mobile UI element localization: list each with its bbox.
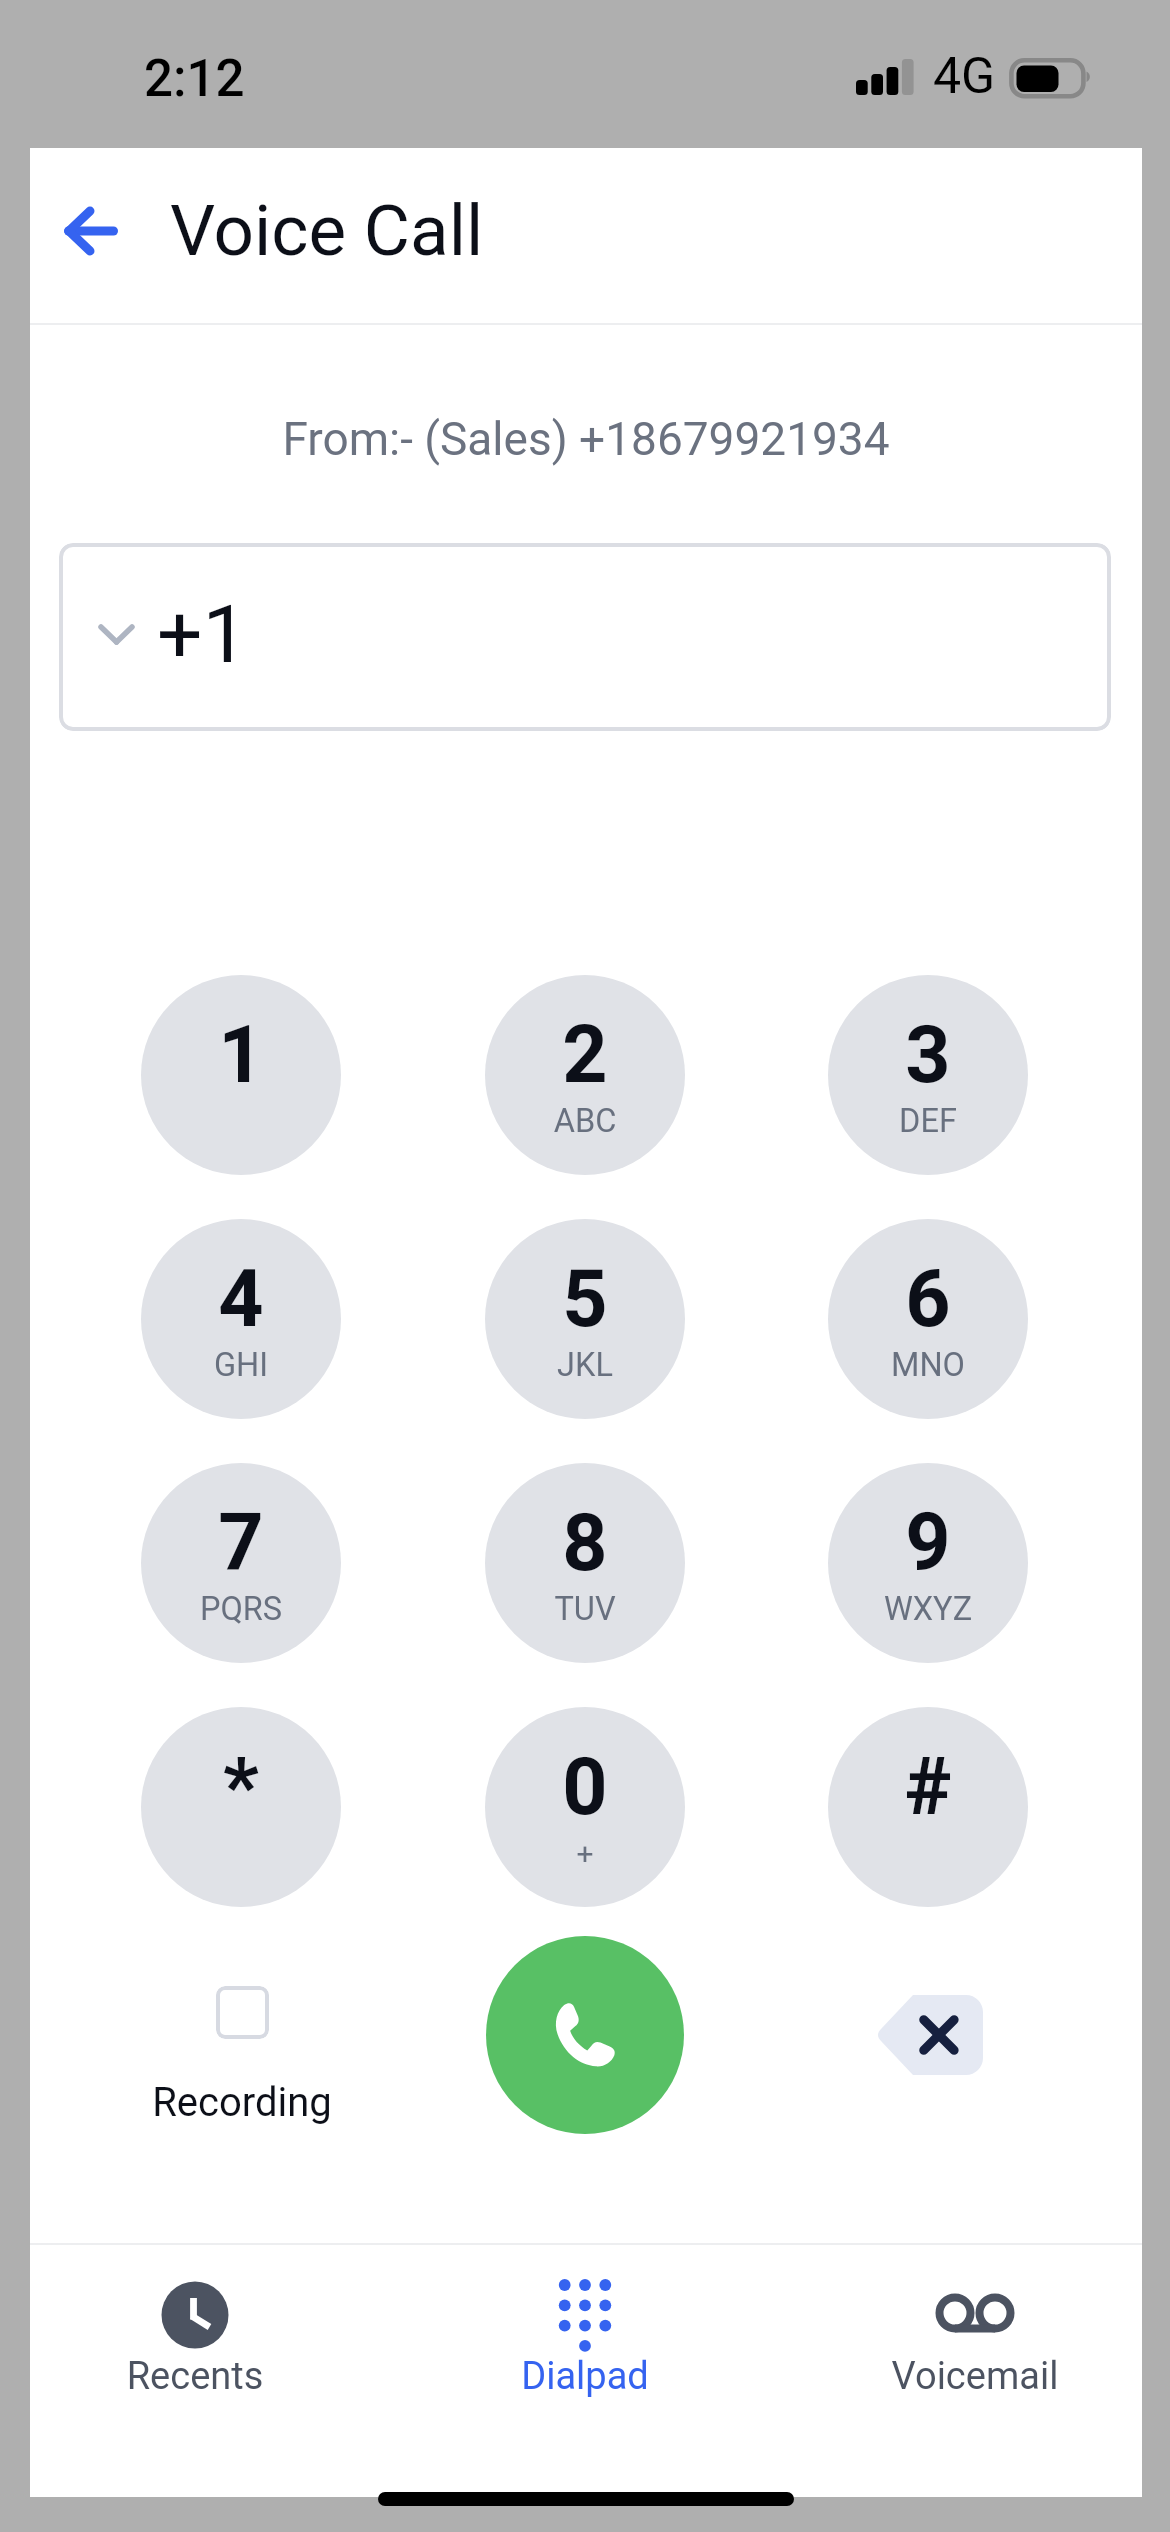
staticText: Voice Call bbox=[170, 189, 484, 272]
staticText: 3 bbox=[828, 1009, 1028, 1102]
staticText: DEF bbox=[828, 1102, 1028, 1140]
staticText: Voicemail bbox=[815, 2354, 1135, 2399]
staticText: 1 bbox=[141, 1009, 341, 1102]
button[interactable]: 6 bbox=[828, 1219, 1028, 1419]
staticText: 8 bbox=[485, 1497, 685, 1590]
staticText: * bbox=[141, 1741, 341, 1834]
staticText: 4G bbox=[933, 47, 996, 106]
staticText: 6 bbox=[828, 1253, 1028, 1346]
button[interactable]: * bbox=[141, 1707, 341, 1907]
staticText: Recording bbox=[72, 2079, 412, 2126]
button[interactable]: Dialpad bbox=[425, 2252, 745, 2422]
button[interactable]: Back bbox=[39, 179, 143, 283]
staticText: + bbox=[485, 1836, 685, 1871]
staticText: GHI bbox=[141, 1346, 341, 1384]
staticText: ABC bbox=[485, 1102, 685, 1140]
button[interactable]: 0 bbox=[485, 1707, 685, 1907]
staticText: PQRS bbox=[141, 1590, 341, 1628]
staticText: WXYZ bbox=[828, 1590, 1028, 1628]
button[interactable]: 9 bbox=[828, 1463, 1028, 1663]
button[interactable]: Voicemail bbox=[815, 2252, 1135, 2422]
button[interactable]: 3 bbox=[828, 975, 1028, 1175]
staticText: Recents bbox=[35, 2354, 355, 2399]
staticText: TUV bbox=[485, 1590, 685, 1628]
staticText: 2 bbox=[485, 1009, 685, 1102]
button[interactable]: Backspace bbox=[875, 1995, 983, 2075]
button[interactable]: Recents bbox=[35, 2252, 355, 2422]
staticText: From:- (Sales) +18679921934 bbox=[30, 412, 1142, 466]
staticText: 7 bbox=[141, 1497, 341, 1590]
button[interactable]: 2 bbox=[485, 975, 685, 1175]
staticText: 0 bbox=[485, 1741, 685, 1834]
button[interactable]: 1 bbox=[141, 975, 341, 1175]
staticText: 2:12 bbox=[144, 49, 245, 109]
button[interactable]: 4 bbox=[141, 1219, 341, 1419]
staticText: 5 bbox=[485, 1253, 685, 1346]
staticText: Dialpad bbox=[425, 2354, 745, 2399]
button[interactable]: 7 bbox=[141, 1463, 341, 1663]
button[interactable]: Call bbox=[486, 1936, 684, 2134]
staticText: 4 bbox=[141, 1253, 341, 1346]
button[interactable]: 8 bbox=[485, 1463, 685, 1663]
button[interactable]: +1 bbox=[59, 543, 1111, 731]
staticText: 9 bbox=[828, 1497, 1028, 1590]
staticText: JKL bbox=[485, 1346, 685, 1384]
staticText: # bbox=[828, 1741, 1028, 1834]
staticText: +1 bbox=[157, 588, 248, 682]
button[interactable]: 5 bbox=[485, 1219, 685, 1419]
button[interactable]: # bbox=[828, 1707, 1028, 1907]
staticText: MNO bbox=[828, 1346, 1028, 1384]
button[interactable]: Recording bbox=[72, 1965, 412, 2130]
